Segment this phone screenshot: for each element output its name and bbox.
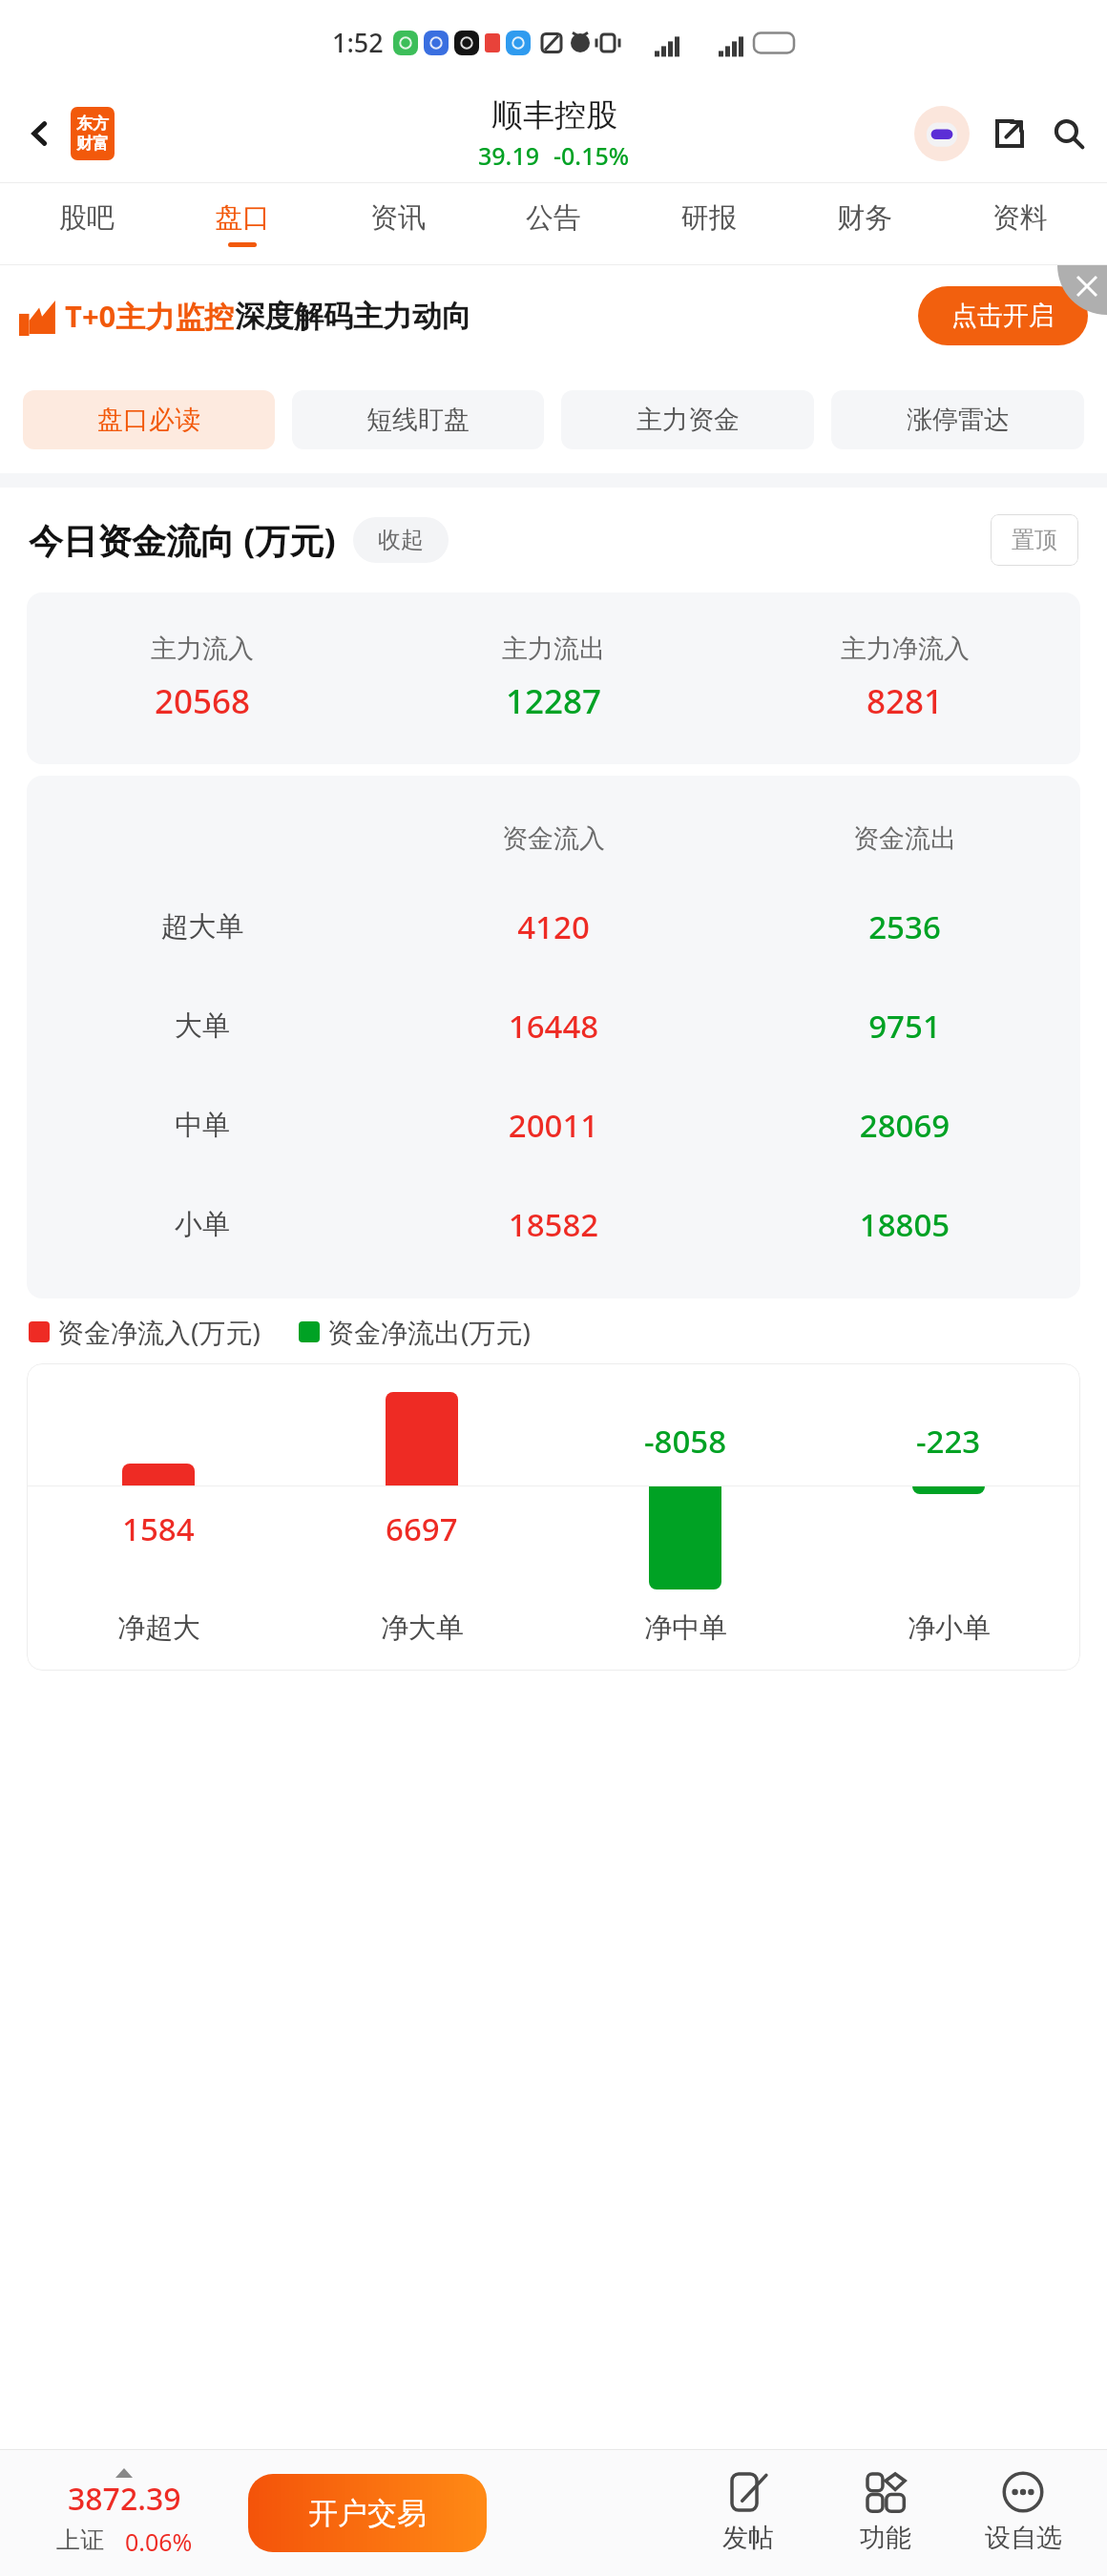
staticText: 净大单 [381, 1610, 464, 1646]
staticText: 20568 [155, 678, 251, 724]
staticText: 1584 [122, 1507, 195, 1550]
staticText: 深度解码主力动向 [235, 298, 471, 335]
staticText: 发帖 [722, 2522, 774, 2554]
staticText: 主力净流入 [841, 633, 970, 665]
button[interactable]: 收起 [353, 517, 449, 563]
staticText: 盘口 [215, 200, 270, 236]
staticText: -223 [916, 1420, 981, 1463]
staticText: 主力流出 [502, 633, 605, 665]
staticText: 资讯 [370, 200, 426, 236]
staticText: 6697 [386, 1507, 458, 1550]
button[interactable]: 研报 [631, 183, 786, 264]
staticText: 0.06% [125, 2525, 193, 2558]
staticText: 大单 [27, 1008, 378, 1044]
staticText: 财富 [76, 134, 109, 154]
staticText: 股吧 [59, 200, 115, 236]
button[interactable]: 盘口必读 [23, 390, 275, 449]
button[interactable]: 功能 [817, 2472, 954, 2554]
staticText: 主力资金 [637, 404, 740, 436]
staticText: 1:52 [332, 25, 384, 60]
button[interactable]: 公告 [475, 183, 631, 264]
staticText: 设自选 [985, 2522, 1062, 2554]
staticText: 资金流出 [729, 822, 1080, 855]
staticText: 资料 [992, 200, 1048, 236]
staticText: 资金净流入(万元) [57, 1314, 261, 1350]
staticText: 盘口必读 [97, 404, 200, 436]
button[interactable]: 点击开启 [918, 286, 1088, 345]
staticText: 2536 [729, 905, 1080, 948]
staticText: 净超大 [117, 1610, 200, 1646]
staticText: 39.19 [478, 139, 540, 172]
staticText: 8281 [867, 678, 944, 724]
staticText: 20011 [378, 1104, 729, 1147]
staticText: 置顶 [1012, 526, 1057, 554]
staticText: 研报 [681, 200, 737, 236]
staticText: 28069 [729, 1104, 1080, 1147]
button[interactable]: Share [985, 109, 1034, 158]
staticText: 财务 [837, 200, 892, 236]
button[interactable]: 置顶 [991, 514, 1078, 566]
staticText: 主力流入 [151, 633, 254, 665]
staticText: 净小单 [908, 1610, 991, 1646]
button[interactable]: Search [1044, 109, 1094, 158]
staticText: 开户交易 [308, 2495, 427, 2532]
button[interactable]: 主力资金 [561, 390, 814, 449]
button[interactable]: 涨停雷达 [831, 390, 1084, 449]
button[interactable]: Close [1057, 265, 1107, 315]
staticText: 16448 [378, 1005, 729, 1048]
button[interactable]: 资金流入 [27, 776, 1080, 1298]
staticText: 涨停雷达 [907, 404, 1010, 436]
staticText: 东方 [76, 114, 109, 134]
button[interactable]: 东方 [71, 107, 115, 160]
staticText: 资金流入 [378, 822, 729, 855]
staticText: -0.15% [553, 139, 630, 172]
button[interactable]: 财务 [786, 183, 942, 264]
staticText: -8058 [644, 1420, 727, 1463]
staticText: T+0主力监控 [65, 296, 235, 336]
staticText: 12287 [506, 678, 602, 724]
button[interactable]: 开户交易 [248, 2474, 487, 2552]
staticText: 今日资金流向 (万元) [29, 517, 336, 564]
staticText: 资金净流出(万元) [327, 1314, 531, 1350]
button[interactable]: 短线盯盘 [292, 390, 544, 449]
button[interactable]: AI assistant [914, 106, 970, 161]
staticText: 功能 [860, 2522, 911, 2554]
button[interactable]: 股吧 [10, 183, 164, 264]
staticText: 18582 [378, 1203, 729, 1246]
button[interactable]: 盘口 [164, 183, 320, 264]
button[interactable]: 1584 [27, 1363, 1080, 1671]
staticText: 4120 [378, 905, 729, 948]
button[interactable]: 设自选 [954, 2472, 1092, 2554]
staticText: 净中单 [644, 1610, 727, 1646]
staticText: 上证 [56, 2525, 104, 2555]
button[interactable]: 资讯 [320, 183, 475, 264]
button[interactable]: 资料 [942, 183, 1097, 264]
staticText: 中单 [27, 1108, 378, 1143]
staticText: 18805 [729, 1203, 1080, 1246]
staticText: 顺丰控股 [491, 95, 617, 135]
staticText: 超大单 [27, 909, 378, 945]
button[interactable]: 主力流入 [27, 592, 1080, 764]
button[interactable]: Back [15, 109, 65, 158]
staticText: 公告 [526, 200, 581, 236]
staticText: 短线盯盘 [366, 404, 470, 436]
staticText: 点击开启 [951, 300, 1055, 332]
staticText: 收起 [378, 526, 424, 554]
staticText: 9751 [729, 1005, 1080, 1048]
staticText: 3872.39 [68, 2478, 181, 2520]
button[interactable]: 3872.39 [0, 2468, 248, 2558]
button[interactable]: 发帖 [679, 2472, 817, 2554]
staticText: 小单 [27, 1207, 378, 1242]
